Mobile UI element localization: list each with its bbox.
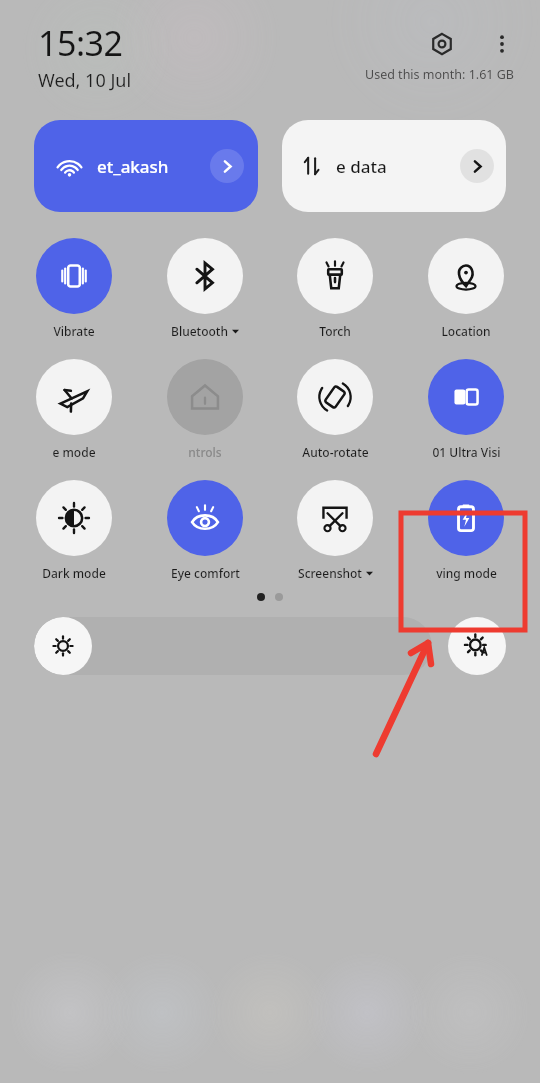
button[interactable]: Settings	[422, 24, 462, 64]
button[interactable]: Dark mode	[16, 478, 132, 583]
staticText: Bluetooth	[171, 323, 228, 339]
button[interactable]: Bluetooth	[147, 236, 263, 341]
button[interactable]: Screenshot	[277, 478, 393, 583]
staticText: Vibrate	[53, 323, 95, 339]
staticText: Wed, 10 Jul	[38, 68, 132, 93]
button[interactable]: Auto brightness	[448, 617, 506, 675]
staticText: et_akash	[97, 155, 169, 178]
staticText: Eye comfort	[171, 565, 240, 581]
staticText: ving mode	[436, 565, 497, 581]
button[interactable]: Torch	[277, 236, 393, 341]
button[interactable]: ntrols	[147, 357, 263, 462]
staticText: Auto-rotate	[302, 444, 369, 460]
staticText: e data	[336, 155, 387, 178]
button[interactable]: e data	[282, 120, 506, 212]
button[interactable]: ving mode	[408, 478, 524, 583]
button[interactable]: More options	[482, 24, 522, 64]
staticText: Dark mode	[42, 565, 106, 581]
button[interactable]: et_akash	[34, 120, 258, 212]
staticText: 01 Ultra Visi	[432, 444, 501, 460]
staticText: Torch	[319, 323, 351, 339]
staticText: Screenshot	[298, 565, 362, 581]
button[interactable]	[34, 617, 432, 675]
staticText: 15:32	[38, 20, 123, 66]
button[interactable]: e mode	[16, 357, 132, 462]
button[interactable]: Eye comfort	[147, 478, 263, 583]
staticText: Location	[441, 323, 491, 339]
staticText: e mode	[52, 444, 96, 460]
staticText: Used this month: 1.61 GB	[365, 66, 514, 83]
button[interactable]: Location	[408, 236, 524, 341]
button[interactable]: Auto-rotate	[277, 357, 393, 462]
staticText: ntrols	[188, 444, 222, 460]
button[interactable]: 01 Ultra Visi	[408, 357, 524, 462]
button[interactable]: Vibrate	[16, 236, 132, 341]
